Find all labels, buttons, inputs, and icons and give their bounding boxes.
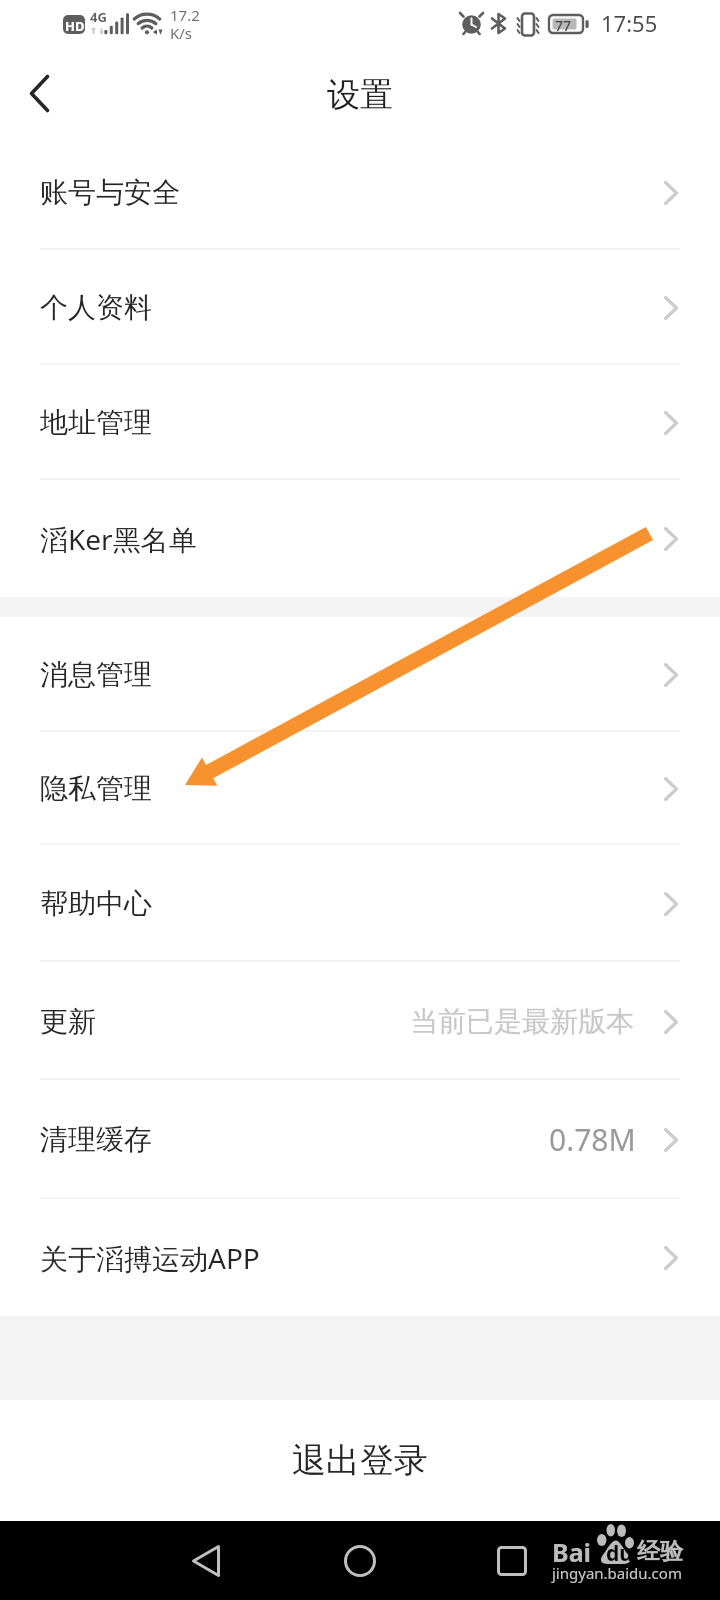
staticText: 滔Ker黑名单: [40, 520, 197, 558]
staticText: 隐私管理: [40, 771, 152, 806]
staticText: 4G: [90, 8, 107, 26]
button[interactable]: Back: [4, 60, 74, 130]
button[interactable]: 消息管理: [0, 617, 720, 732]
staticText: du: [606, 1539, 633, 1568]
staticText: 设置: [327, 74, 393, 116]
staticText: 经验: [637, 1537, 683, 1566]
staticText: 关于滔搏运动APP: [40, 1239, 260, 1277]
staticText: 个人资料: [40, 290, 152, 325]
staticText: jingyan.baidu.com: [552, 1563, 682, 1583]
staticText: 清理缓存: [40, 1122, 152, 1157]
button[interactable]: 账号与安全: [0, 135, 720, 250]
button[interactable]: 滔Ker黑名单: [0, 480, 720, 597]
button[interactable]: 更新: [0, 962, 720, 1080]
button[interactable]: 关于滔搏运动APP: [0, 1199, 720, 1316]
button[interactable]: Home: [330, 1531, 390, 1591]
staticText: 账号与安全: [40, 175, 180, 210]
button[interactable]: 帮助中心: [0, 845, 720, 962]
button[interactable]: Back: [176, 1531, 236, 1591]
staticText: HD: [65, 17, 85, 35]
button[interactable]: 清理缓存: [0, 1080, 720, 1199]
staticText: K/s: [170, 23, 193, 43]
button[interactable]: 个人资料: [0, 250, 720, 365]
button[interactable]: Recents: [482, 1531, 542, 1591]
staticText: 0.78M: [549, 1119, 636, 1160]
staticText: Bai: [552, 1535, 592, 1569]
staticText: 帮助中心: [40, 886, 152, 921]
staticText: 77: [555, 16, 572, 35]
staticText: 地址管理: [40, 405, 152, 440]
staticText: 退出登录: [292, 1439, 428, 1482]
button[interactable]: 地址管理: [0, 365, 720, 480]
button[interactable]: 隐私管理: [0, 732, 720, 845]
staticText: 17:55: [601, 8, 658, 38]
button[interactable]: 退出登录: [0, 1400, 720, 1521]
staticText: 更新: [40, 1004, 96, 1039]
staticText: 消息管理: [40, 657, 152, 692]
staticText: 当前已是最新版本: [410, 1004, 634, 1039]
staticText: 17.2: [170, 5, 200, 25]
